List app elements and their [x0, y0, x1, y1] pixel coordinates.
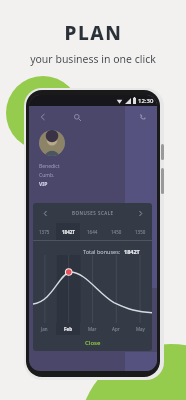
staticText: Total bonuses: [83, 248, 124, 255]
staticText: 1644 [87, 229, 98, 235]
staticText: Jan [41, 326, 48, 332]
staticText: your business in one click [30, 52, 156, 66]
staticText: Apr [112, 326, 120, 332]
button[interactable]: Search [71, 111, 83, 123]
staticText: May [136, 326, 145, 332]
button[interactable]: Previous [39, 207, 51, 219]
staticText: Feb [64, 326, 73, 332]
button[interactable]: Next [134, 207, 146, 219]
staticText: 12:30 [138, 97, 154, 105]
button[interactable]: 1375 [33, 223, 56, 240]
staticText: Mar [88, 326, 97, 332]
button[interactable]: 1842T [56, 223, 80, 240]
staticText: 1842T [124, 248, 140, 255]
button[interactable]: Back [37, 111, 49, 123]
staticText: Close [85, 339, 101, 347]
button[interactable]: 1450 [104, 223, 128, 240]
staticText: BONUSES SCALE [72, 210, 114, 216]
button[interactable]: Call [137, 111, 149, 123]
staticText: 1842T [62, 229, 75, 235]
button[interactable]: 1644 [80, 223, 104, 240]
staticText: PLAN [64, 20, 123, 46]
staticText: 1350 [135, 229, 146, 235]
button[interactable]: 1350 [128, 223, 152, 240]
staticText: 1450 [111, 229, 122, 235]
staticText: VIP [39, 181, 48, 188]
button[interactable]: Close [33, 335, 152, 351]
staticText: 1375 [39, 229, 50, 235]
staticText: Cumb. [39, 172, 55, 179]
staticText: Benedict [39, 163, 60, 170]
